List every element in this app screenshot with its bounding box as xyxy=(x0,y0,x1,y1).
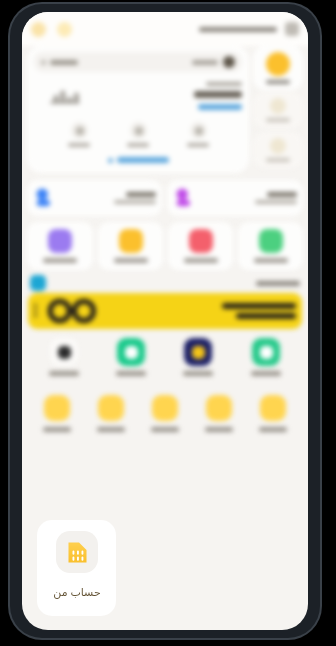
button[interactable]: Tile 2 xyxy=(98,222,163,270)
button[interactable] xyxy=(27,180,162,216)
button[interactable]: App 3 xyxy=(164,335,232,379)
button[interactable] xyxy=(167,180,303,216)
button[interactable]: Service xyxy=(84,393,138,434)
button[interactable]: Tile 1 xyxy=(27,222,93,270)
button[interactable]: Action xyxy=(183,122,213,147)
button[interactable]: Shortcut xyxy=(253,92,303,128)
button[interactable]: Service xyxy=(246,393,300,434)
button[interactable]: Action xyxy=(64,122,94,147)
button[interactable]: Menu xyxy=(285,22,299,36)
button[interactable] xyxy=(106,155,171,165)
button[interactable] xyxy=(41,52,235,72)
button[interactable]: Tile 4 xyxy=(238,222,303,270)
button[interactable]: Tile 3 xyxy=(168,222,233,270)
button[interactable]: Shortcut xyxy=(253,132,303,168)
button[interactable] xyxy=(28,293,302,329)
button[interactable]: App 4 xyxy=(232,335,300,379)
button[interactable]: Offers xyxy=(57,22,72,37)
button[interactable]: App 1 xyxy=(30,335,97,379)
button[interactable]: Notifications xyxy=(31,22,46,37)
button[interactable]: Service xyxy=(192,393,246,434)
button[interactable]: Service xyxy=(30,393,84,434)
button[interactable]: Action xyxy=(123,122,153,147)
staticText: حساب من xyxy=(53,584,101,599)
button[interactable]: حساب من xyxy=(37,520,116,616)
button[interactable]: Service xyxy=(138,393,192,434)
button[interactable]: App 2 xyxy=(97,335,164,379)
button[interactable]: Shortcut xyxy=(253,46,303,90)
